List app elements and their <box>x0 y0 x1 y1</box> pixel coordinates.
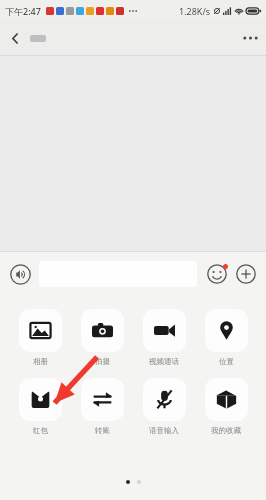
staticText: 我的收藏 <box>211 426 241 435</box>
staticText: 1.28K/s <box>179 5 211 17</box>
button[interactable]: 相册 <box>12 309 68 366</box>
button[interactable]: 转账 <box>74 378 130 435</box>
button[interactable]: Emoji <box>204 261 230 287</box>
staticText: 红包 <box>33 426 48 435</box>
button[interactable]: More options <box>234 22 266 54</box>
staticText: 位置 <box>219 357 234 366</box>
button[interactable]: Back <box>0 23 30 53</box>
staticText: 相册 <box>33 357 48 366</box>
staticText: 转账 <box>95 426 110 435</box>
button[interactable]: 红包 <box>12 378 68 435</box>
staticText: 下午2:47 <box>5 5 41 17</box>
staticText: 视频通话 <box>149 357 179 366</box>
button[interactable]: 位置 <box>198 309 254 366</box>
staticText: 语音输入 <box>149 426 179 435</box>
button[interactable]: Voice message <box>7 261 33 287</box>
button[interactable]: 视频通话 <box>136 309 192 366</box>
staticText: 拍摄 <box>95 357 110 366</box>
button[interactable]: 语音输入 <box>136 378 192 435</box>
button[interactable]: 拍摄 <box>74 309 130 366</box>
button[interactable]: 我的收藏 <box>198 378 254 435</box>
button[interactable]: More functions <box>233 261 259 287</box>
